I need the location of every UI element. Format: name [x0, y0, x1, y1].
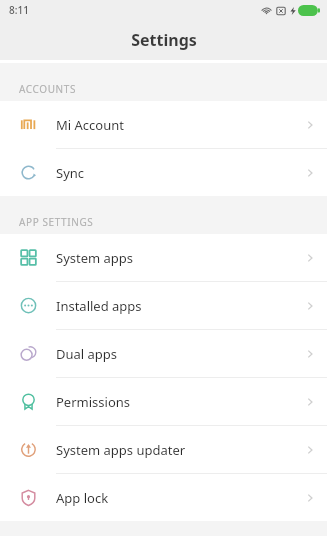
staticText: Sync — [56, 164, 293, 182]
button[interactable]: Sync — [0, 149, 327, 196]
staticText: System apps updater — [56, 441, 293, 459]
button[interactable]: Mi Account — [0, 101, 327, 149]
staticText: Dual apps — [56, 345, 293, 363]
button[interactable]: Permissions — [0, 378, 327, 426]
staticText: Settings — [131, 29, 197, 51]
button[interactable]: System apps — [0, 234, 327, 282]
staticText: APP SETTINGS — [19, 215, 94, 229]
button[interactable]: App lock — [0, 474, 327, 521]
staticText: Permissions — [56, 393, 293, 411]
button[interactable]: Dual apps — [0, 330, 327, 378]
staticText: System apps — [56, 249, 293, 267]
staticText: App lock — [56, 489, 293, 507]
staticText: 8:11 — [9, 3, 29, 17]
staticText: ACCOUNTS — [19, 82, 76, 96]
button[interactable]: Installed apps — [0, 282, 327, 330]
button[interactable]: System apps updater — [0, 426, 327, 474]
staticText: Installed apps — [56, 297, 293, 315]
staticText: Mi Account — [56, 116, 293, 134]
